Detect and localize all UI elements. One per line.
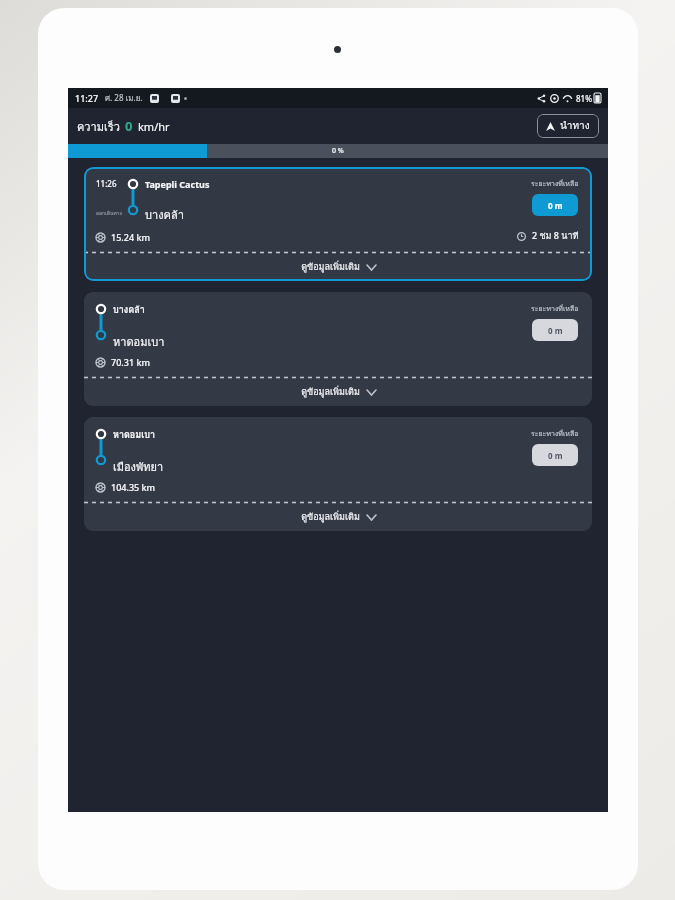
staticText: 104.35 km bbox=[111, 481, 156, 493]
staticText: Tapepli Cactus bbox=[145, 178, 210, 190]
button[interactable]: 0 m bbox=[532, 319, 578, 341]
staticText: ระยะทางที่เหลือ bbox=[531, 428, 579, 439]
staticText: 0 % bbox=[332, 146, 344, 156]
staticText: บางคล้า bbox=[145, 206, 184, 223]
staticText: 0 m bbox=[548, 200, 563, 211]
staticText: 11:27 bbox=[75, 92, 99, 104]
button[interactable]: 0 m bbox=[532, 444, 578, 466]
staticText: km/hr bbox=[138, 119, 170, 134]
staticText: 2 ชม 8 นาที bbox=[532, 229, 579, 243]
staticText: ระยะทางที่เหลือ bbox=[531, 303, 579, 314]
staticText: 15.24 km bbox=[111, 231, 150, 243]
button[interactable]: บางคล้า bbox=[84, 292, 592, 406]
staticText: ศ. 28 เม.ย. bbox=[105, 92, 143, 105]
button[interactable]: ดูข้อมูลเพิ่มเติม bbox=[84, 253, 592, 281]
other: Expand bbox=[367, 515, 376, 520]
staticText: 0 m bbox=[548, 325, 563, 336]
button[interactable]: ดูข้อมูลเพิ่มเติม bbox=[84, 503, 592, 531]
button[interactable]: 11:26 bbox=[84, 167, 592, 281]
staticText: ดูข้อมูลเพิ่มเติม bbox=[301, 385, 360, 399]
button[interactable]: นำทาง bbox=[537, 114, 599, 138]
staticText: บางคล้า bbox=[113, 303, 145, 317]
staticText: ดูข้อมูลเพิ่มเติม bbox=[301, 510, 360, 524]
staticText: 0 bbox=[125, 117, 133, 135]
staticText: ความเร็ว bbox=[77, 118, 120, 135]
staticText: 81% bbox=[576, 93, 592, 104]
staticText: 70.31 km bbox=[111, 356, 150, 368]
staticText: เมืองพัทยา bbox=[113, 458, 164, 475]
staticText: ออกเดินทาง bbox=[96, 209, 122, 217]
button[interactable]: หาดอมเบา bbox=[84, 417, 592, 531]
button[interactable]: ดูข้อมูลเพิ่มเติม bbox=[84, 378, 592, 406]
other: Expand bbox=[367, 390, 376, 395]
staticText: หาดอมเบา bbox=[113, 333, 165, 350]
staticText: นำทาง bbox=[560, 118, 590, 134]
staticText: ระยะทางที่เหลือ bbox=[531, 178, 579, 189]
button[interactable]: 0 m bbox=[532, 194, 578, 216]
staticText: 11:26 bbox=[96, 178, 117, 189]
other: Expand bbox=[367, 265, 376, 270]
staticText: หาดอมเบา bbox=[113, 428, 156, 442]
staticText: ดูข้อมูลเพิ่มเติม bbox=[301, 260, 360, 274]
staticText: 0 m bbox=[548, 450, 563, 461]
